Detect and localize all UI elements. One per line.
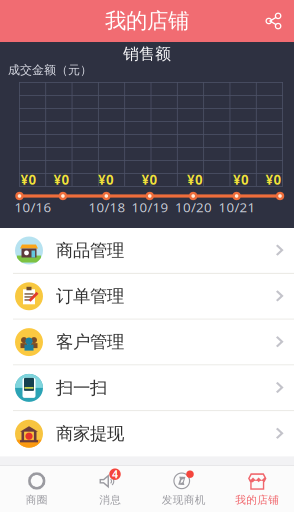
staticText: ¥0	[265, 171, 281, 188]
staticText: 客户管理	[56, 331, 124, 353]
staticText: ¥0	[21, 171, 37, 188]
button[interactable]: 客户管理	[0, 320, 294, 365]
staticText: 4	[112, 467, 118, 481]
staticText: 我的店铺	[105, 8, 189, 34]
staticText: ¥0	[141, 171, 157, 188]
staticText: 10/19	[131, 198, 168, 216]
button[interactable]: 4	[73, 466, 147, 512]
staticText: 10/21	[218, 198, 255, 216]
staticText: 消息	[99, 493, 121, 506]
staticText: ¥0	[233, 171, 249, 188]
staticText: 10/20	[175, 198, 212, 216]
staticText: 商圈	[26, 493, 48, 506]
staticText: 10/18	[88, 198, 125, 216]
staticText: 商家提现	[56, 423, 124, 444]
staticText: 扫一扫	[56, 377, 107, 399]
staticText: 我的店铺	[235, 493, 279, 506]
button[interactable]: 商家提现	[0, 411, 294, 456]
button[interactable]: 订单管理	[0, 274, 294, 319]
staticText: ¥0	[98, 171, 114, 188]
button[interactable]: 商品管理	[0, 228, 294, 273]
button[interactable]: Share	[256, 0, 290, 42]
button[interactable]: 商圈	[0, 466, 73, 512]
staticText: 成交金额（元）	[8, 63, 92, 77]
staticText: 销售额	[123, 44, 171, 64]
staticText: 10/16	[14, 198, 51, 216]
staticText: ¥0	[53, 171, 69, 188]
staticText: 商品管理	[56, 240, 124, 261]
staticText: 发现商机	[162, 493, 206, 506]
staticText: ¥0	[187, 171, 203, 188]
button[interactable]: 我的店铺	[220, 466, 294, 512]
staticText: 订单管理	[56, 286, 124, 307]
button[interactable]: 发现商机	[147, 466, 220, 512]
button[interactable]: 扫一扫	[0, 365, 294, 410]
